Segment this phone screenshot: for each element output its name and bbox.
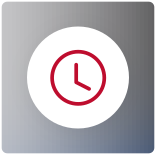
button[interactable]: Clock [0, 0, 156, 155]
